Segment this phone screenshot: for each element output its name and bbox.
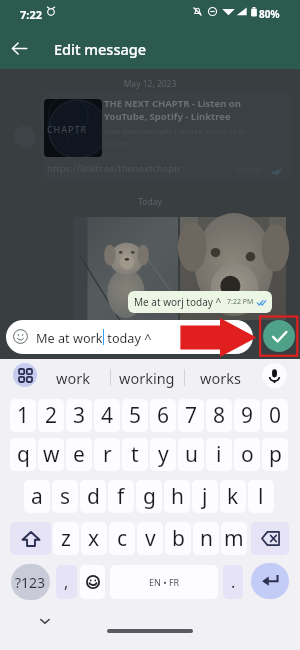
- button[interactable]: 7: [178, 399, 204, 432]
- staticText: https://linktr.ee/thenextchaptr: [47, 162, 182, 175]
- staticText: THE NEXT CHAPTR - Listen on YouTube, Spo…: [104, 97, 241, 123]
- staticText: 9: [241, 401, 254, 430]
- staticText: q: [17, 440, 30, 469]
- button[interactable]: ,: [56, 565, 77, 599]
- staticText: 80%: [259, 7, 280, 21]
- staticText: y: [158, 440, 169, 469]
- button[interactable]: r: [94, 438, 120, 471]
- button[interactable]: x: [81, 522, 107, 555]
- button[interactable]: 8: [206, 399, 232, 432]
- button[interactable]: p: [262, 438, 288, 471]
- button[interactable]: 1: [10, 399, 36, 432]
- staticText: .: [231, 571, 236, 593]
- button[interactable]: z: [53, 522, 79, 555]
- staticText: r: [103, 440, 112, 469]
- button[interactable]: .: [223, 565, 243, 599]
- staticText: 7:22: [20, 7, 42, 22]
- staticText: working: [119, 368, 175, 388]
- staticText: f: [117, 482, 125, 511]
- staticText: u: [185, 440, 198, 469]
- button[interactable]: 2: [38, 399, 64, 432]
- staticText: 3: [73, 401, 86, 430]
- staticText: View thenextchaptr Linktree. Listen to t…: [104, 126, 247, 136]
- button[interactable]: e: [66, 438, 92, 471]
- staticText: i: [216, 440, 222, 469]
- button[interactable]: n: [193, 522, 219, 555]
- staticText: w: [43, 440, 60, 469]
- staticText: 1: [17, 401, 30, 430]
- staticText: Me at worj today ^: [134, 295, 222, 309]
- button[interactable]: 6: [150, 399, 176, 432]
- button[interactable]: b: [165, 522, 191, 555]
- staticText: l: [258, 482, 264, 511]
- button[interactable]: k: [220, 480, 246, 513]
- button[interactable]: q: [10, 438, 36, 471]
- staticText: 7: [185, 401, 198, 430]
- button[interactable]: g: [136, 480, 162, 513]
- staticText: ,: [64, 571, 69, 593]
- button[interactable]: h: [164, 480, 190, 513]
- staticText: e: [73, 440, 85, 469]
- staticText: EN • FR: [149, 576, 180, 588]
- button[interactable]: c: [109, 522, 135, 555]
- button[interactable]: o: [234, 438, 260, 471]
- button[interactable]: 3: [66, 399, 92, 432]
- staticText: p: [269, 440, 282, 469]
- button[interactable]: EN • FR: [110, 565, 218, 599]
- button[interactable]: f: [108, 480, 134, 513]
- button[interactable]: Me at work: [6, 320, 253, 354]
- button[interactable]: 4: [94, 399, 120, 432]
- staticText: z: [61, 524, 71, 553]
- staticText: works: [200, 368, 241, 388]
- button[interactable]: u: [178, 438, 204, 471]
- button[interactable]: ?123: [11, 564, 50, 600]
- button[interactable]: s: [52, 480, 78, 513]
- staticText: n: [200, 524, 213, 553]
- button[interactable]: works: [185, 359, 255, 397]
- button[interactable]: Enter: [251, 563, 289, 599]
- staticText: t: [131, 440, 139, 469]
- button[interactable]: 5: [122, 399, 148, 432]
- staticText: j: [202, 482, 208, 511]
- staticText: work: [56, 368, 90, 388]
- staticText: May 12, 2023: [0, 78, 300, 90]
- button[interactable]: t: [122, 438, 148, 471]
- button[interactable]: Hide keyboard: [36, 612, 54, 630]
- button[interactable]: m: [221, 522, 247, 555]
- staticText: s: [60, 482, 71, 511]
- staticText: k: [227, 482, 239, 511]
- staticText: g: [143, 482, 156, 511]
- button[interactable]: l: [248, 480, 274, 513]
- staticText: Today: [0, 196, 300, 208]
- button[interactable]: work: [42, 359, 104, 397]
- staticText: Edit message: [54, 39, 147, 59]
- staticText: o: [241, 440, 254, 469]
- staticText: 7:22 PM: [227, 297, 254, 307]
- staticText: v: [145, 524, 156, 553]
- staticText: 4: [101, 401, 114, 430]
- button[interactable]: i: [206, 438, 232, 471]
- button[interactable]: 0: [262, 399, 288, 432]
- button[interactable]: w: [38, 438, 64, 471]
- staticText: 6: [157, 401, 170, 430]
- staticText: m: [224, 524, 244, 553]
- button[interactable]: 9: [234, 399, 260, 432]
- button[interactable]: Back: [5, 34, 34, 63]
- button[interactable]: Shift: [10, 522, 51, 555]
- staticText: 8: [213, 401, 226, 430]
- button[interactable]: j: [192, 480, 218, 513]
- button[interactable]: Save edit: [263, 320, 295, 352]
- button[interactable]: working: [111, 359, 183, 397]
- button[interactable]: d: [80, 480, 106, 513]
- button[interactable]: v: [137, 522, 163, 555]
- button[interactable]: a: [24, 480, 50, 513]
- button[interactable]: Backspace: [251, 522, 289, 555]
- staticText: x: [88, 524, 100, 553]
- staticText: b: [172, 524, 185, 553]
- button[interactable]: y: [150, 438, 176, 471]
- button[interactable]: Keyboard tools: [13, 363, 37, 387]
- button[interactable]: Voice input: [262, 363, 287, 388]
- button[interactable]: Emoji: [80, 565, 105, 599]
